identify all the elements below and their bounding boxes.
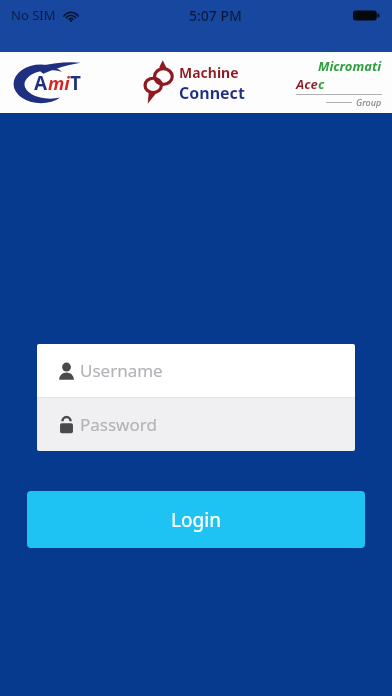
button[interactable]: Login — [27, 491, 365, 548]
staticText: Machine — [179, 63, 239, 82]
staticText: Password — [80, 413, 157, 436]
staticText: Micromatic — [318, 57, 382, 93]
staticText: mi — [48, 71, 70, 96]
staticText: Group — [356, 96, 382, 108]
staticText: A — [34, 70, 48, 96]
button[interactable]: Password — [37, 398, 355, 451]
staticText: Login — [171, 507, 221, 533]
staticText: Username — [80, 359, 163, 382]
staticText: T — [70, 70, 81, 96]
staticText: No SIM — [11, 6, 56, 24]
staticText: 5:07 PM — [189, 6, 242, 25]
staticText: Ace — [296, 75, 318, 93]
button[interactable]: Username — [37, 344, 355, 397]
staticText: Connect — [179, 82, 245, 103]
